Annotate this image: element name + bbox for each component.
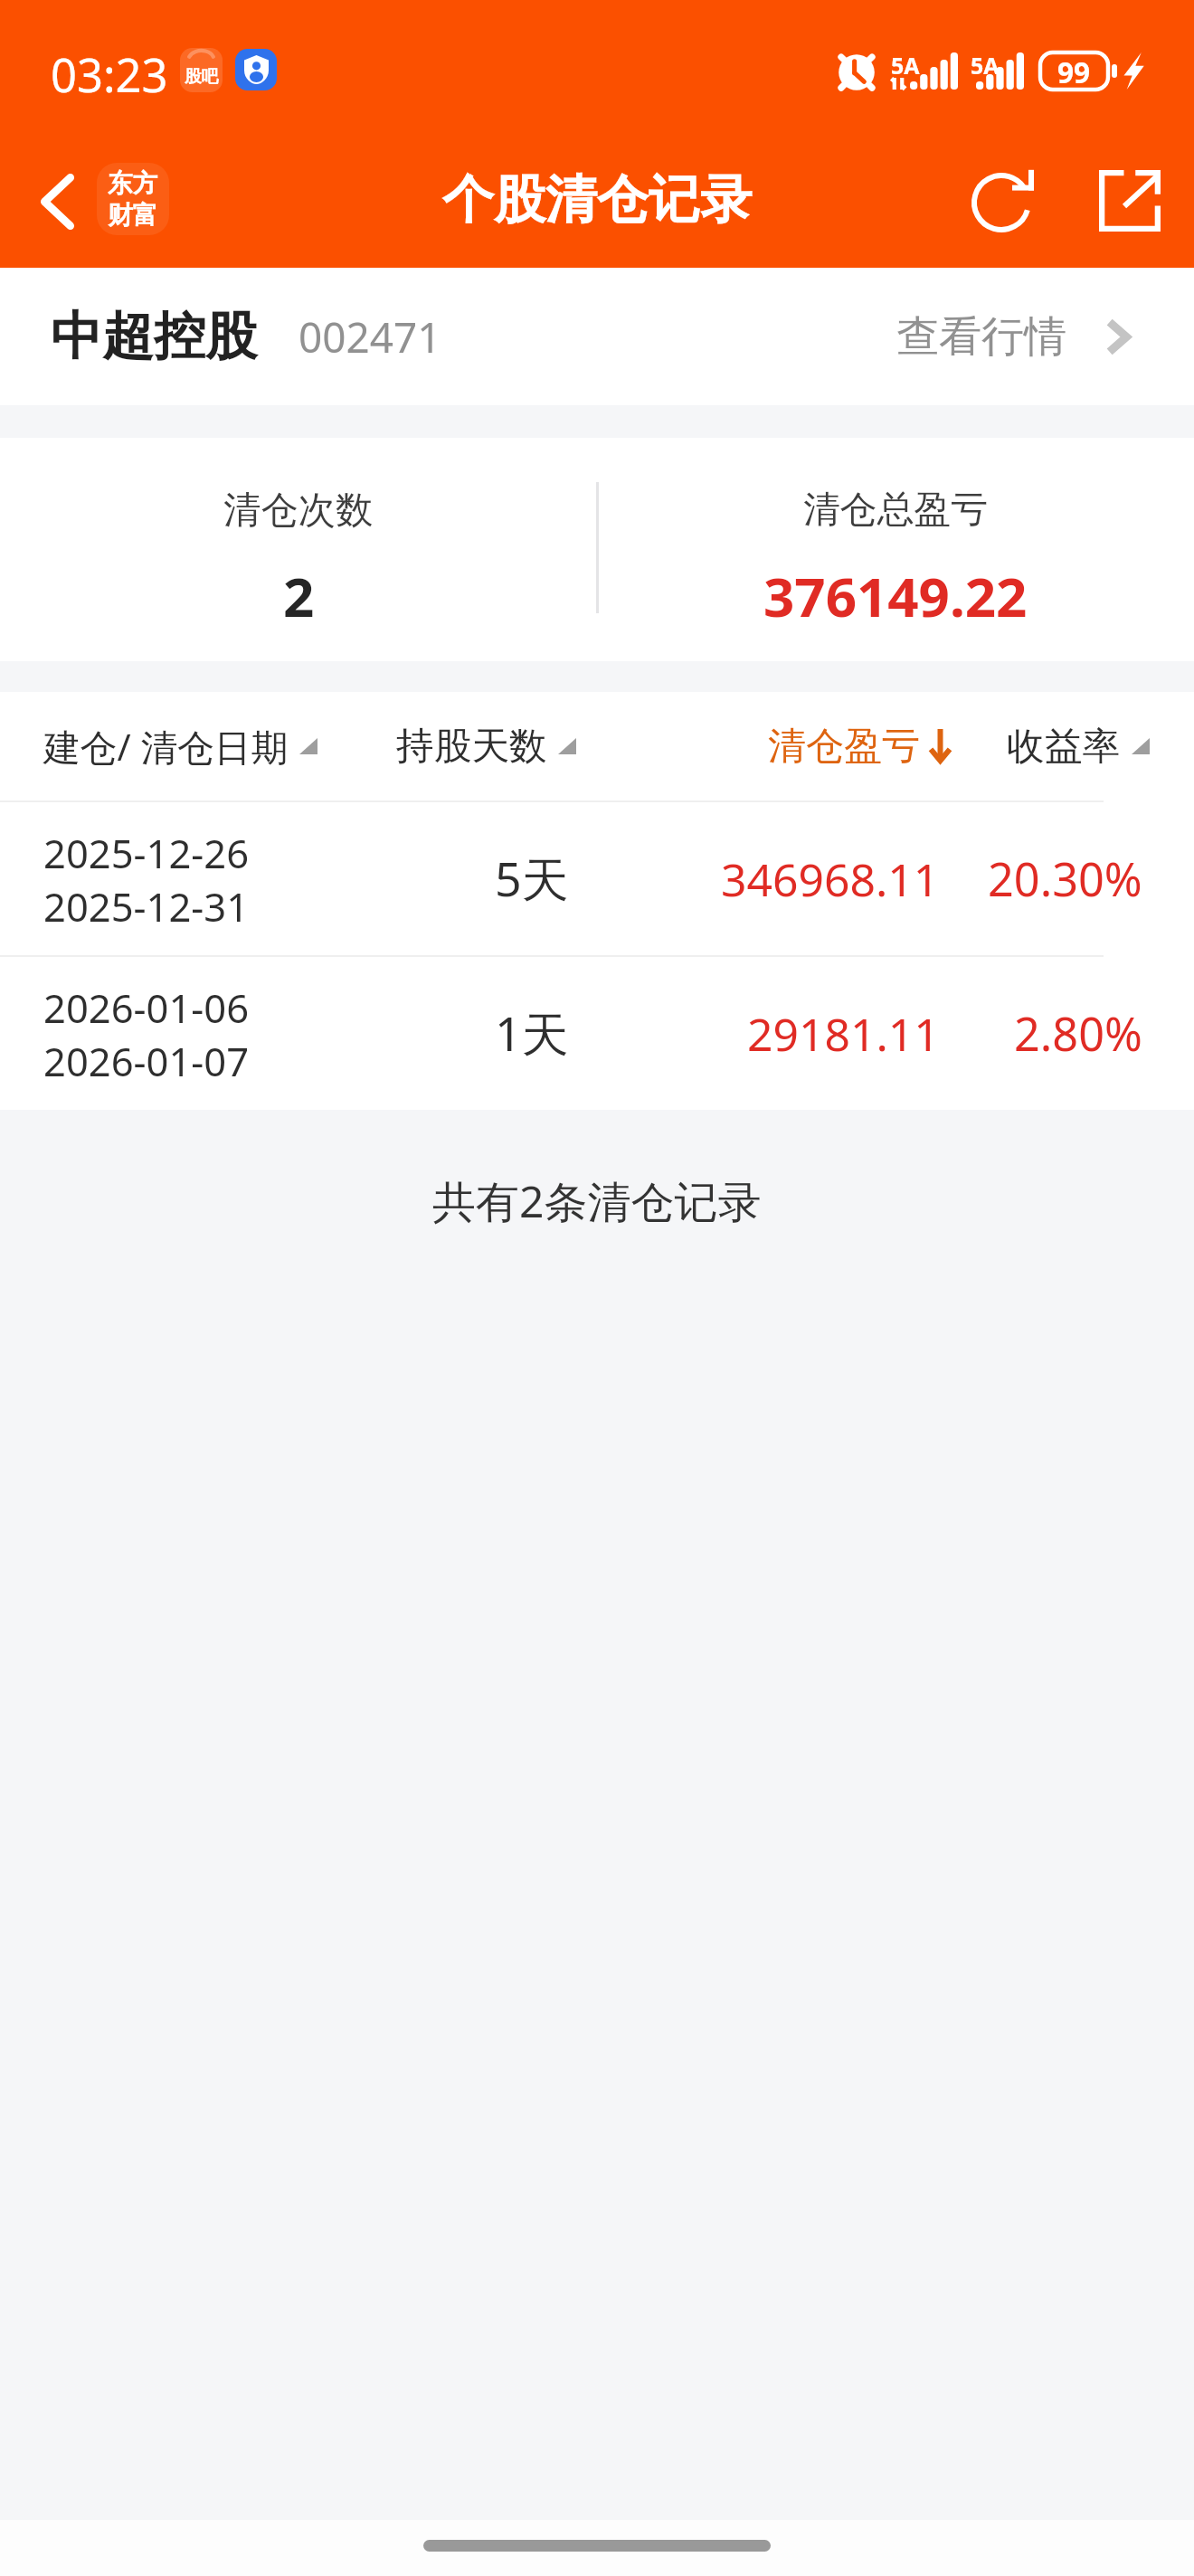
button[interactable]: 2025-12-26 bbox=[0, 802, 1194, 955]
button[interactable]: 持股天数 bbox=[396, 692, 643, 800]
staticText: 20.30% bbox=[988, 848, 1142, 910]
staticText: 持股天数 bbox=[396, 723, 547, 771]
staticText: 收益率 bbox=[1007, 723, 1121, 771]
staticText: 2026-01-06 bbox=[43, 980, 250, 1034]
staticText: 东方 bbox=[108, 167, 158, 199]
staticText: 中超控股 bbox=[51, 304, 257, 369]
button[interactable]: 查看行情 bbox=[896, 294, 1130, 380]
button[interactable]: 东方财富 bbox=[97, 163, 169, 235]
staticText: 股吧 bbox=[185, 66, 219, 87]
staticText: 5天 bbox=[495, 847, 569, 911]
staticText: 个股清仓记录 bbox=[442, 167, 752, 232]
button[interactable]: 清仓盈亏 bbox=[643, 692, 952, 800]
staticText: 2 bbox=[283, 559, 315, 633]
button[interactable]: 2026-01-06 bbox=[0, 957, 1194, 1110]
staticText: 查看行情 bbox=[896, 310, 1067, 364]
staticText: 29181.11 bbox=[747, 1003, 940, 1065]
staticText: 376149.22 bbox=[763, 559, 1028, 633]
staticText: 1天 bbox=[495, 1001, 569, 1065]
staticText: 2026-01-07 bbox=[43, 1034, 250, 1087]
button[interactable]: 收益率 bbox=[952, 692, 1194, 800]
staticText: 5A bbox=[971, 50, 1000, 80]
button[interactable]: Back bbox=[22, 152, 92, 251]
staticText: 清仓次数 bbox=[223, 487, 374, 534]
staticText: 99 bbox=[1057, 52, 1091, 90]
staticText: 2025-12-31 bbox=[43, 879, 250, 933]
staticText: 建仓/ 清仓日期 bbox=[43, 721, 289, 772]
staticText: 2.80% bbox=[1014, 1002, 1142, 1065]
button[interactable]: Share bbox=[1068, 139, 1190, 261]
button[interactable]: Refresh bbox=[942, 139, 1064, 261]
staticText: 共有2条清仓记录 bbox=[432, 1171, 762, 1231]
staticText: 5A bbox=[891, 50, 920, 80]
staticText: 清仓总盈亏 bbox=[803, 487, 988, 533]
staticText: 346968.11 bbox=[721, 848, 940, 910]
staticText: 财富 bbox=[108, 199, 158, 231]
staticText: 清仓盈亏 bbox=[768, 723, 920, 771]
button[interactable]: 建仓/ 清仓日期 bbox=[0, 692, 396, 800]
staticText: 2025-12-26 bbox=[43, 826, 250, 879]
staticText: 002471 bbox=[298, 308, 441, 365]
staticText: 03:23 bbox=[51, 43, 168, 106]
